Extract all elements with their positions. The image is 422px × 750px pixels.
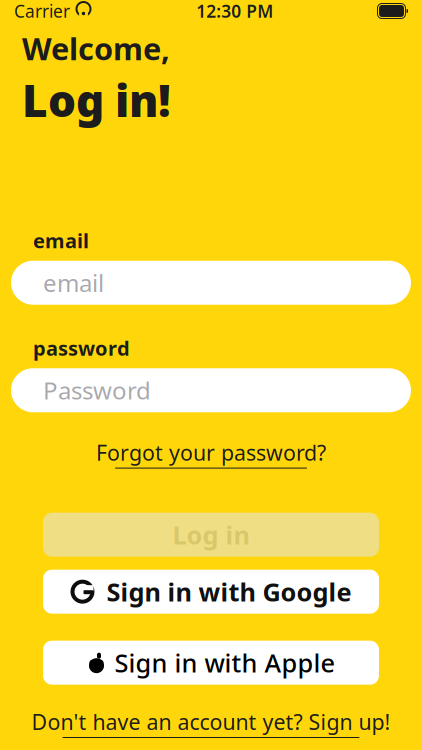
staticText: Sign in with Apple: [114, 646, 335, 679]
button[interactable]: Forgot your password?: [96, 438, 326, 469]
staticText: 12:30 PM: [196, 0, 273, 22]
staticText: Don't have an account yet? Sign up!: [31, 708, 390, 736]
button[interactable]: Sign in with Google: [43, 570, 379, 614]
staticText: email: [33, 227, 89, 254]
staticText: Password: [43, 374, 151, 406]
staticText: Forgot your password?: [96, 438, 326, 467]
staticText: password: [33, 335, 130, 361]
staticText: Carrier: [14, 0, 70, 22]
button[interactable]: Don't have an account yet? Sign up!: [31, 708, 390, 738]
staticText: Log in: [172, 518, 249, 551]
staticText: Welcome,: [22, 28, 170, 69]
button[interactable]: Sign in with Apple: [43, 641, 379, 685]
staticText: email: [43, 267, 104, 299]
staticText: Log in!: [22, 71, 171, 129]
button[interactable]: Log in: [43, 513, 379, 557]
staticText: Sign in with Google: [106, 575, 351, 608]
